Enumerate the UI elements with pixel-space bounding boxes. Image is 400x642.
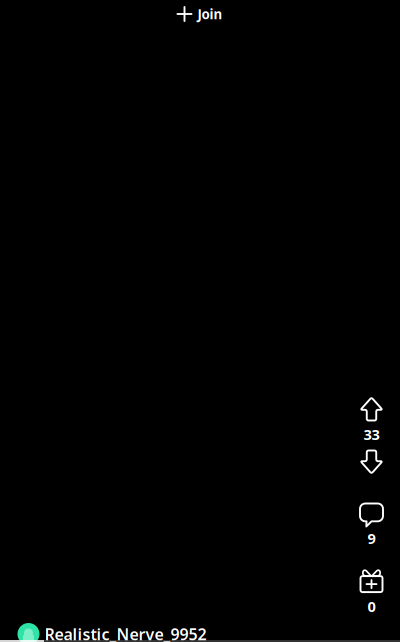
staticText: Realistic_Nerve_9952 (44, 623, 206, 642)
staticText: 0 (367, 597, 375, 616)
button[interactable]: Join (165, 0, 234, 29)
staticText: Join (197, 5, 222, 23)
button[interactable]: Comments (350, 493, 393, 536)
button[interactable]: Downvote (350, 440, 392, 483)
button[interactable]: Upvote (350, 387, 392, 430)
staticText: 33 (363, 425, 379, 444)
button[interactable]: Give award (350, 559, 392, 602)
staticText: 9 (367, 529, 375, 548)
button[interactable]: Realistic_Nerve_9952 (17, 619, 206, 642)
